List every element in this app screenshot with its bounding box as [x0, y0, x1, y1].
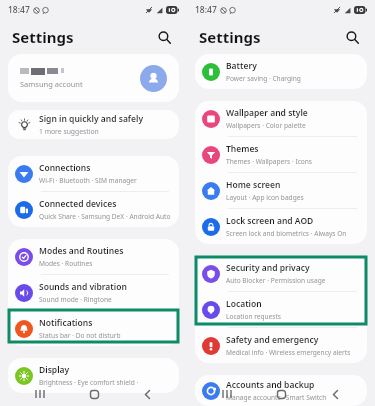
staticText: Medical info · Wireless emergency alerts: [226, 348, 351, 357]
staticText: Manage accounts · Smart Switch: [226, 393, 327, 402]
staticText: Themes · Wallpapers · Icons: [226, 157, 313, 166]
staticText: 1 more suggestion: [39, 127, 99, 136]
button[interactable]: Display: [8, 358, 179, 393]
button[interactable]: Search: [153, 26, 175, 48]
staticText: Wi-Fi · Bluetooth · SIM manager: [39, 176, 137, 185]
staticText: Quick Share · Samsung DeX · Android Auto: [39, 212, 171, 221]
staticText: Samsung account: [20, 79, 83, 89]
button[interactable]: Battery: [195, 54, 367, 89]
button[interactable]: Connections: [8, 156, 179, 191]
staticText: Sound mode · Ringtone: [39, 295, 112, 304]
staticText: Auto Blocker · Permission usage: [226, 276, 326, 285]
staticText: 18:47: [195, 4, 217, 16]
staticText: Settings: [199, 27, 261, 47]
staticText: Location: [226, 298, 262, 310]
button[interactable]: Connected devices: [8, 192, 179, 227]
staticText: Security and privacy: [226, 262, 310, 274]
staticText: Home screen: [226, 179, 281, 191]
button[interactable]: Modes and Routines: [8, 239, 179, 274]
staticText: Modes and Routines: [39, 245, 124, 257]
button[interactable]: Themes: [195, 137, 367, 172]
button[interactable]: Recents: [213, 382, 241, 406]
staticText: Power saving · Charging: [226, 74, 301, 83]
staticText: Layout · App icon badges: [226, 193, 304, 202]
button[interactable]: Safety and emergency: [195, 328, 367, 363]
button[interactable]: Location: [195, 292, 367, 327]
button[interactable]: Back: [321, 382, 349, 406]
staticText: Wallpapers · Color palette: [226, 121, 306, 130]
staticText: Status bar · Do not disturb: [39, 331, 121, 340]
staticText: Sign in quickly and safely: [39, 113, 144, 125]
button[interactable]: Sign in quickly and safely: [8, 110, 179, 139]
button[interactable]: Accounts and backup: [195, 375, 367, 406]
button[interactable]: Wallpaper and style: [195, 101, 367, 136]
button[interactable]: Recents: [26, 382, 54, 406]
staticText: Accounts and backup: [226, 379, 315, 391]
staticText: Settings: [12, 27, 74, 47]
button[interactable]: Back: [133, 382, 161, 406]
button[interactable]: Samsung account: [8, 54, 179, 102]
staticText: Notifications: [39, 317, 93, 329]
staticText: Modes · Routines: [39, 259, 93, 268]
staticText: Sounds and vibration: [39, 281, 127, 293]
button[interactable]: Search: [341, 26, 363, 48]
button[interactable]: Home: [80, 382, 108, 406]
staticText: Connected devices: [39, 198, 117, 210]
staticText: Location requests: [226, 312, 282, 321]
staticText: Lock screen and AOD: [226, 215, 314, 227]
staticText: Brightness · Eye comfort shield · Naviga…: [39, 378, 171, 387]
staticText: Safety and emergency: [226, 334, 319, 346]
staticText: Wallpaper and style: [226, 107, 308, 119]
staticText: Themes: [226, 143, 259, 155]
button[interactable]: Home screen: [195, 173, 367, 208]
staticText: Battery: [226, 60, 257, 72]
button[interactable]: Sounds and vibration: [8, 275, 179, 310]
staticText: Screen lock and biometrics · Always On D…: [226, 229, 359, 238]
staticText: Connections: [39, 162, 91, 174]
staticText: Display: [39, 364, 70, 376]
button[interactable]: Notifications: [8, 311, 179, 346]
button[interactable]: Security and privacy: [195, 256, 367, 291]
staticText: 18:47: [8, 4, 30, 16]
button[interactable]: Home: [267, 382, 295, 406]
button[interactable]: Lock screen and AOD: [195, 209, 367, 244]
